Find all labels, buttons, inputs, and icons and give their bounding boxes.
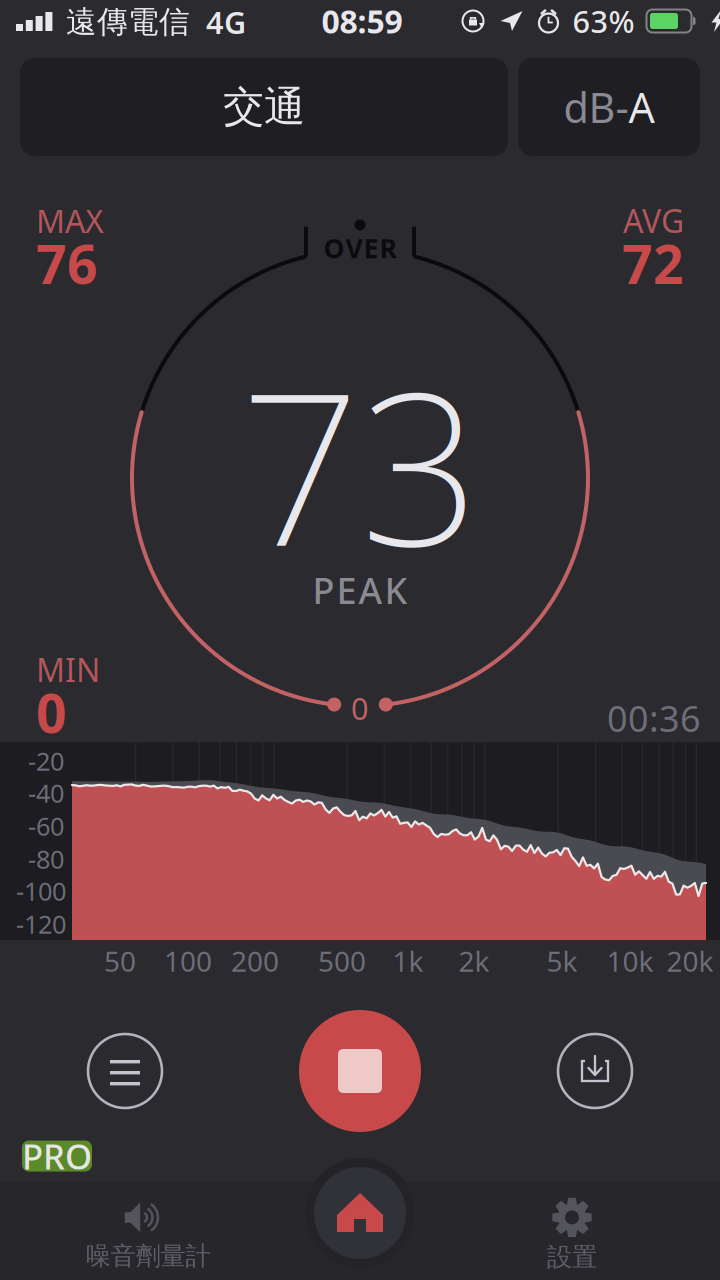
staticText: 交通 (223, 82, 305, 132)
staticText: -40 (28, 776, 64, 810)
staticText: -80 (28, 842, 64, 876)
staticText: AVG (623, 199, 684, 242)
staticText: 200 (231, 942, 279, 980)
staticText: 4G (206, 2, 246, 42)
staticText: 76 (36, 228, 98, 299)
staticText: 5k (546, 942, 577, 980)
staticText: 遠傳電信 (66, 3, 190, 41)
staticText: PEAK (312, 566, 407, 614)
staticText: 設置 (547, 1241, 597, 1272)
staticText: 0 (351, 688, 369, 728)
button[interactable]: Home (304, 1157, 416, 1269)
staticText: 2k (458, 942, 489, 980)
button[interactable]: 交通 (20, 58, 508, 156)
staticText: 100 (164, 942, 212, 980)
staticText: 噪音劑量計 (85, 1240, 210, 1271)
staticText: OVER (323, 230, 396, 266)
staticText: MAX (36, 199, 104, 242)
staticText: dB- (563, 80, 628, 134)
staticText: 72 (622, 228, 684, 299)
staticText: 50 (104, 942, 136, 980)
staticText: -20 (28, 744, 64, 778)
staticText: 0 (36, 677, 67, 748)
button[interactable]: Stop recording (295, 1006, 425, 1136)
staticText: -60 (28, 809, 64, 843)
staticText: 10k (606, 942, 653, 980)
button[interactable]: dB- (518, 58, 700, 156)
button[interactable]: 噪音劑量計 (28, 1191, 268, 1280)
staticText: 00:36 (607, 694, 701, 742)
staticText: 500 (318, 942, 366, 980)
button[interactable]: Save (540, 1016, 650, 1126)
button[interactable]: 設置 (452, 1191, 692, 1280)
staticText: -120 (16, 907, 66, 941)
button[interactable]: PRO (22, 1140, 92, 1171)
staticText: 63% (572, 1, 634, 41)
staticText: PRO (22, 1133, 92, 1179)
button[interactable]: Menu (70, 1016, 180, 1126)
staticText: 73 (240, 324, 480, 604)
staticText: 08:59 (321, 0, 402, 42)
staticText: 1k (392, 942, 423, 980)
staticText: MIN (36, 648, 100, 691)
staticText: A (628, 80, 654, 134)
staticText: -100 (16, 874, 66, 908)
staticText: 20k (666, 942, 713, 980)
